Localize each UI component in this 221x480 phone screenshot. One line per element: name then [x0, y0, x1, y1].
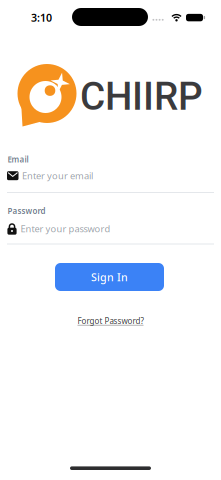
button[interactable]: Sign In [55, 263, 164, 291]
staticText: Enter your email [22, 169, 93, 182]
staticText: CHIIRP [80, 74, 203, 119]
staticText: 3:10 [31, 10, 52, 25]
staticText: Password [7, 205, 45, 216]
staticText: Enter your password [20, 222, 110, 235]
staticText: Email [7, 154, 28, 165]
button[interactable]: Enter your password [7, 222, 214, 235]
button[interactable]: Enter your email [7, 169, 214, 182]
button[interactable]: Forgot Password? [77, 316, 143, 326]
staticText: Forgot Password? [77, 316, 143, 326]
staticText: Sign In [91, 270, 128, 284]
